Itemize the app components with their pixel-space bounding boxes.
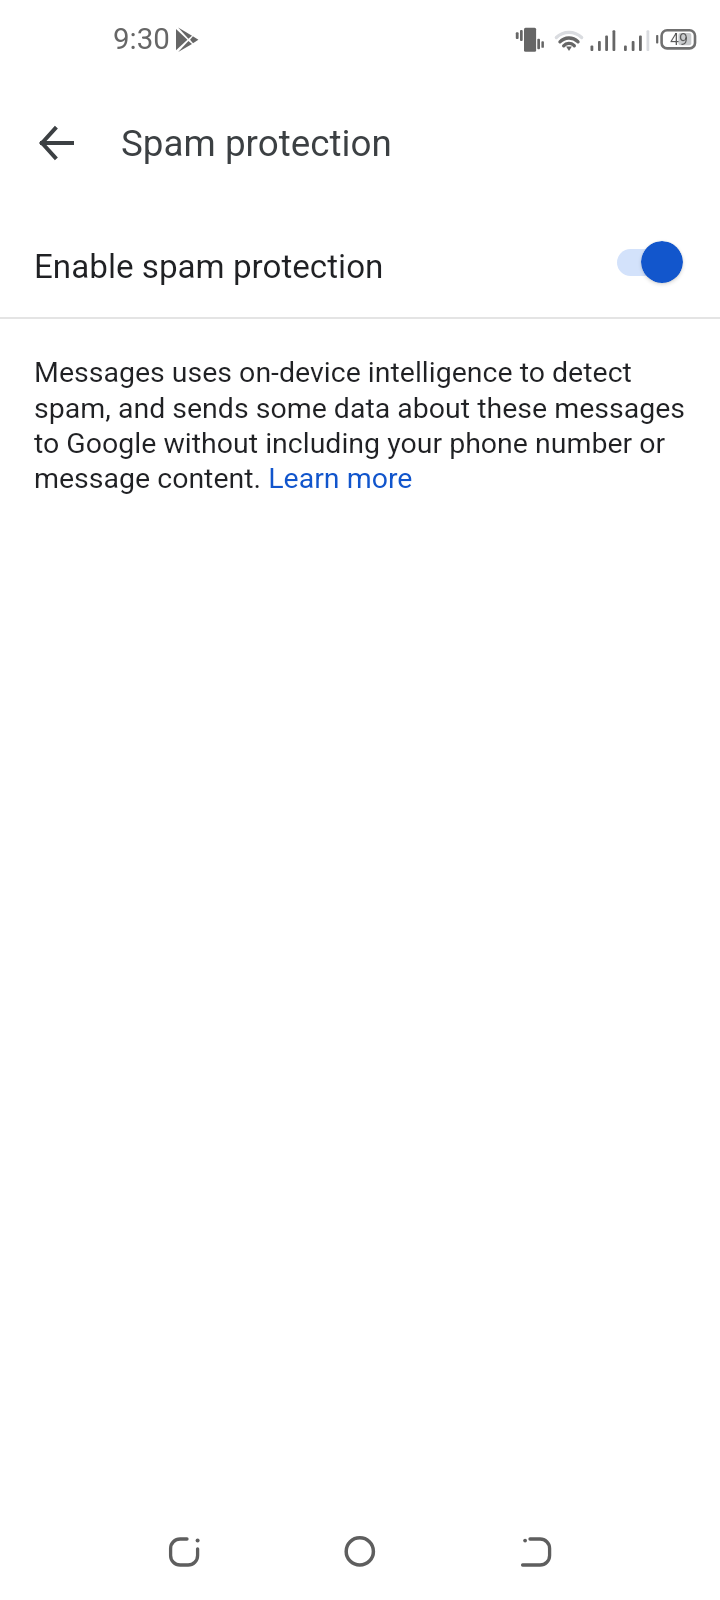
staticText: Spam protection [121, 122, 392, 165]
staticText: Messages uses on-device intelligence to … [34, 356, 704, 495]
button[interactable]: Enable spam protection [0, 202, 720, 317]
staticText: 49 [670, 30, 688, 49]
button[interactable]: Recent apps [513, 1485, 623, 1595]
button[interactable]: Back [16, 103, 96, 183]
button[interactable]: Home [305, 1485, 415, 1595]
button[interactable]: Learn more [268, 463, 412, 499]
staticText: Enable spam protection [34, 247, 384, 286]
staticText: 9:30 [113, 22, 170, 57]
button[interactable]: Back [98, 1485, 208, 1595]
